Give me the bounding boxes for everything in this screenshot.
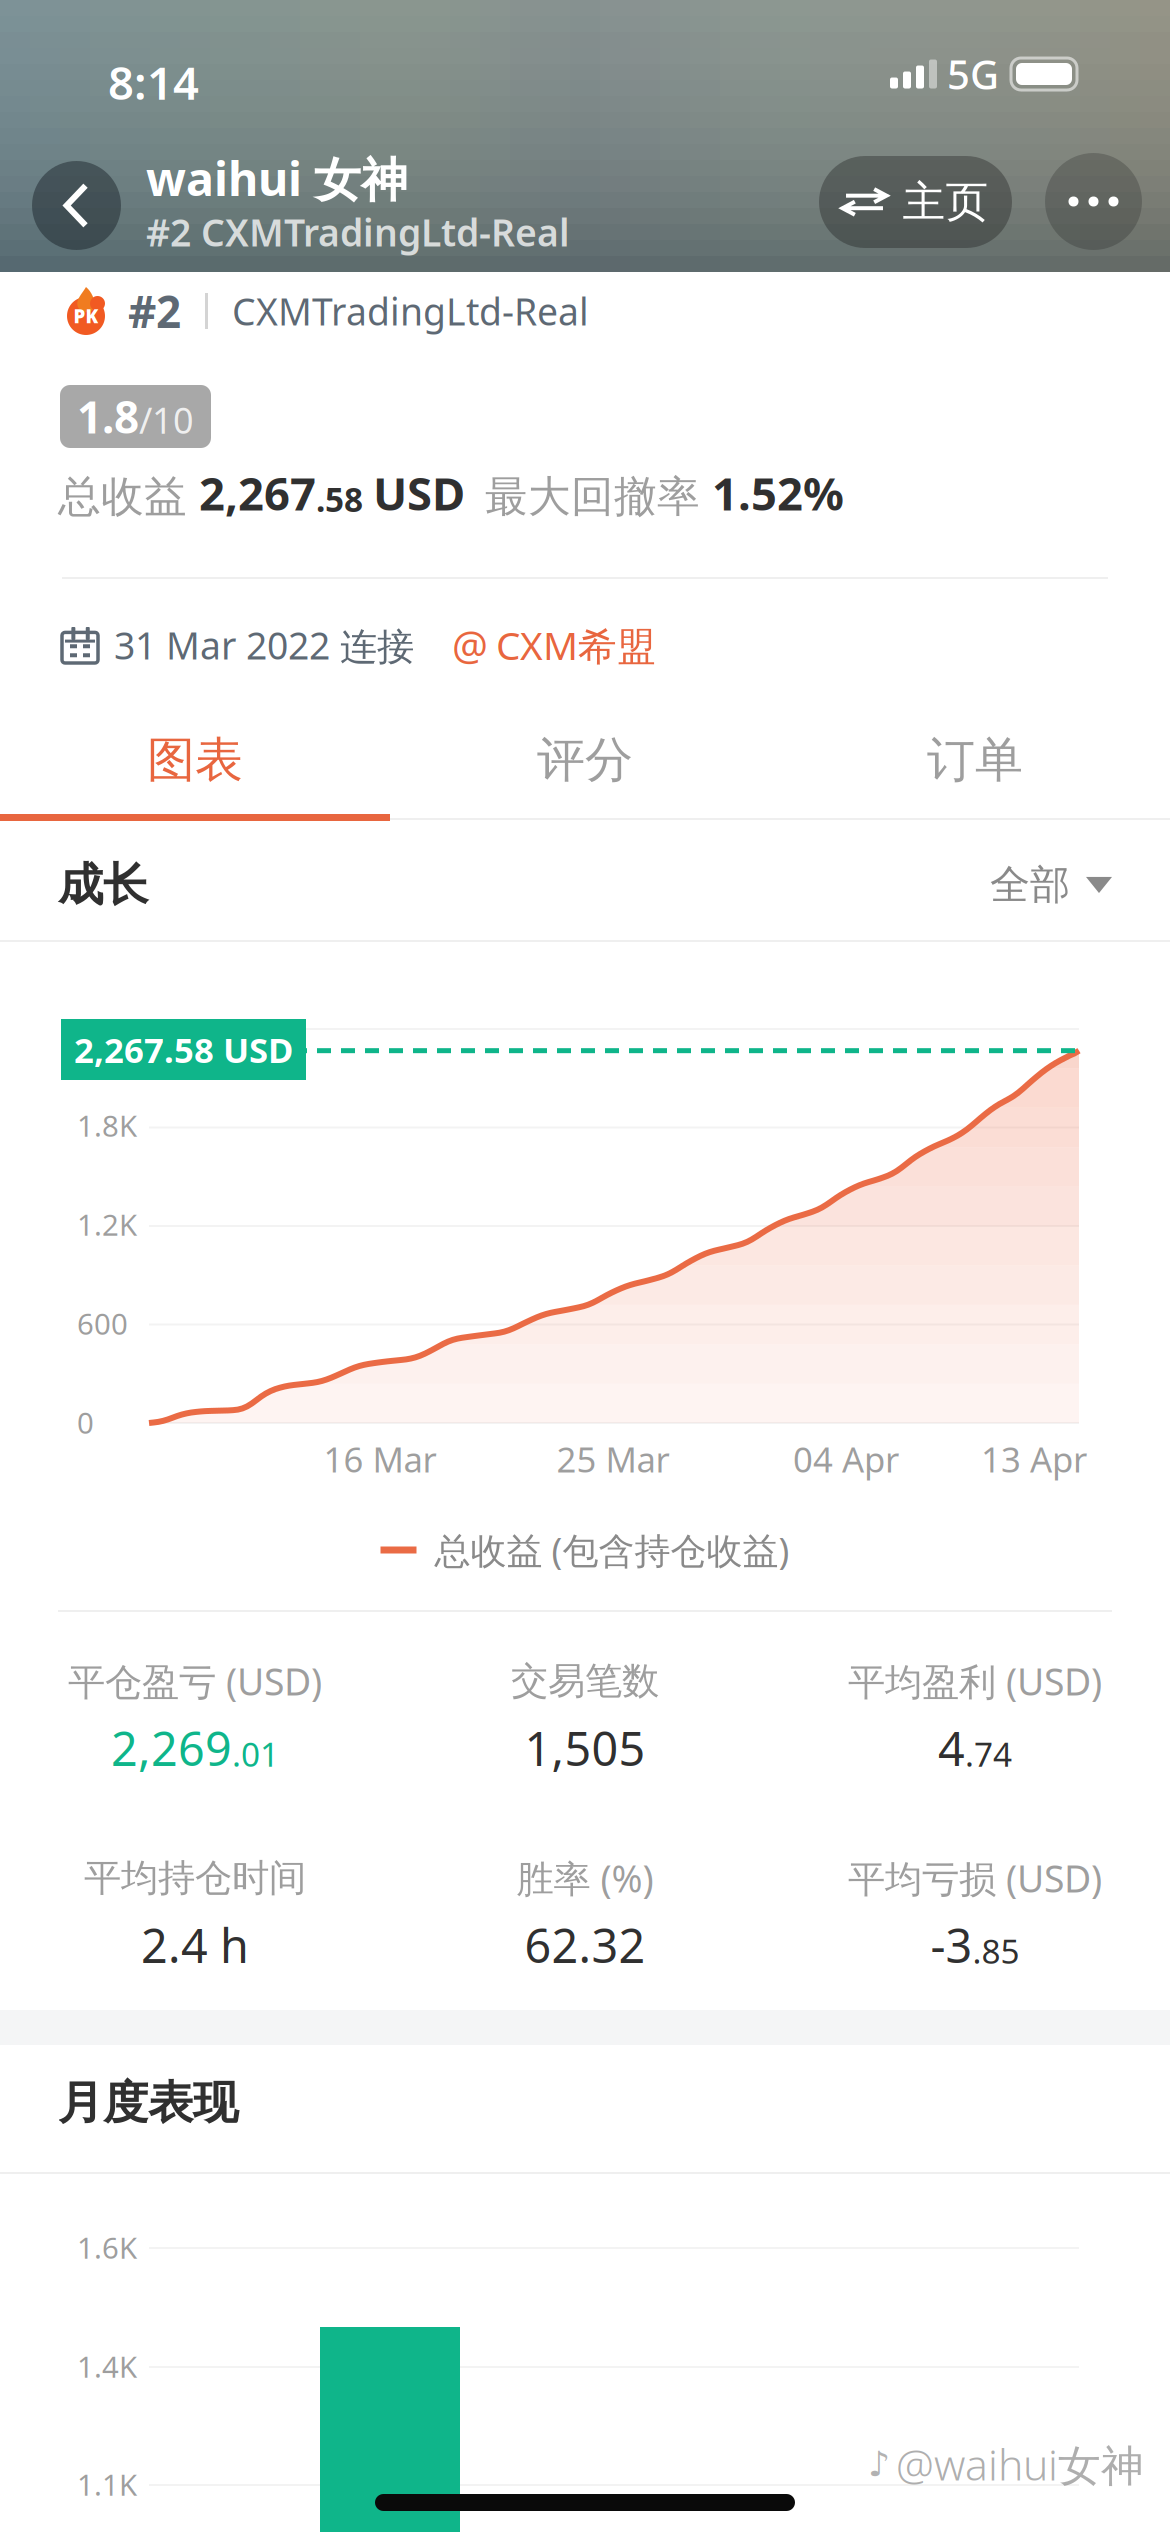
- staticText: 600: [77, 1304, 128, 1343]
- button[interactable]: 图表: [0, 705, 390, 815]
- staticText: 主页: [902, 176, 988, 228]
- staticText: 图表: [147, 730, 243, 789]
- staticText: 1.8K: [77, 1106, 137, 1145]
- staticText: 总收益: [58, 471, 187, 523]
- button[interactable]: More options: [1045, 153, 1142, 250]
- button[interactable]: 评分: [390, 705, 780, 815]
- button[interactable]: 订单: [780, 705, 1170, 815]
- staticText: 成长: [58, 857, 148, 913]
- staticText: 1.52%: [712, 463, 844, 523]
- staticText: 1,505: [524, 1717, 645, 1779]
- staticText: 31 Mar 2022 连接: [114, 620, 414, 670]
- staticText: 2,267.58 USD: [74, 1026, 293, 1072]
- staticText: 平均持仓时间: [84, 1855, 306, 1901]
- staticText: .85: [972, 1929, 1019, 1973]
- button[interactable]: @: [414, 617, 656, 673]
- staticText: PK: [73, 304, 98, 328]
- staticText: @: [452, 618, 488, 671]
- staticText: 1.6K: [77, 2228, 137, 2267]
- staticText: .01: [232, 1732, 279, 1776]
- staticText: 4: [938, 1717, 965, 1779]
- staticText: 5G: [947, 47, 999, 100]
- staticText: 评分: [537, 730, 633, 789]
- staticText: 8:14: [108, 52, 199, 112]
- button[interactable]: Back: [32, 161, 121, 250]
- staticText: 平仓盈亏 (USD): [68, 1656, 322, 1706]
- button[interactable]: 主页: [819, 156, 1012, 248]
- staticText: .74: [965, 1732, 1012, 1776]
- staticText: 月度表现: [58, 2075, 238, 2131]
- staticText: #2: [128, 282, 181, 340]
- staticText: /10: [139, 396, 194, 444]
- staticText: 平均盈利 (USD): [848, 1656, 1102, 1706]
- staticText: 1.2K: [77, 1205, 137, 1244]
- staticText: waihui 女神: [146, 147, 408, 209]
- staticText: 1.1K: [77, 2465, 137, 2504]
- staticText: 1.8: [77, 387, 139, 446]
- staticText: @waihui女神: [896, 2436, 1144, 2492]
- staticText: 16 Mar: [323, 1436, 436, 1482]
- staticText: .58: [316, 477, 363, 521]
- button[interactable]: 全部: [982, 845, 1112, 925]
- staticText: CXM希盟: [496, 619, 656, 671]
- staticText: 总收益 (包含持仓收益): [434, 1526, 789, 1574]
- staticText: USD: [373, 463, 465, 523]
- staticText: 平均亏损 (USD): [848, 1853, 1102, 1903]
- staticText: 2.4 h: [141, 1914, 249, 1976]
- staticText: 最大回撤率: [485, 471, 700, 523]
- staticText: 胜率 (%): [516, 1853, 653, 1903]
- staticText: 25 Mar: [556, 1436, 669, 1482]
- staticText: 订单: [927, 730, 1023, 789]
- staticText: 0: [77, 1403, 94, 1442]
- staticText: 1.4K: [77, 2347, 137, 2386]
- staticText: 62.32: [524, 1914, 645, 1976]
- staticText: 2,269: [111, 1717, 232, 1779]
- staticText: #2 CXMTradingLtd-Real: [146, 207, 570, 257]
- staticText: ♪: [868, 2444, 890, 2484]
- staticText: 13 Apr: [981, 1436, 1087, 1482]
- staticText: 交易笔数: [511, 1658, 659, 1704]
- staticText: 04 Apr: [793, 1436, 899, 1482]
- staticText: -3: [930, 1914, 972, 1976]
- staticText: CXMTradingLtd-Real: [232, 286, 589, 336]
- staticText: 全部: [990, 860, 1070, 909]
- staticText: 2,267: [199, 463, 316, 523]
